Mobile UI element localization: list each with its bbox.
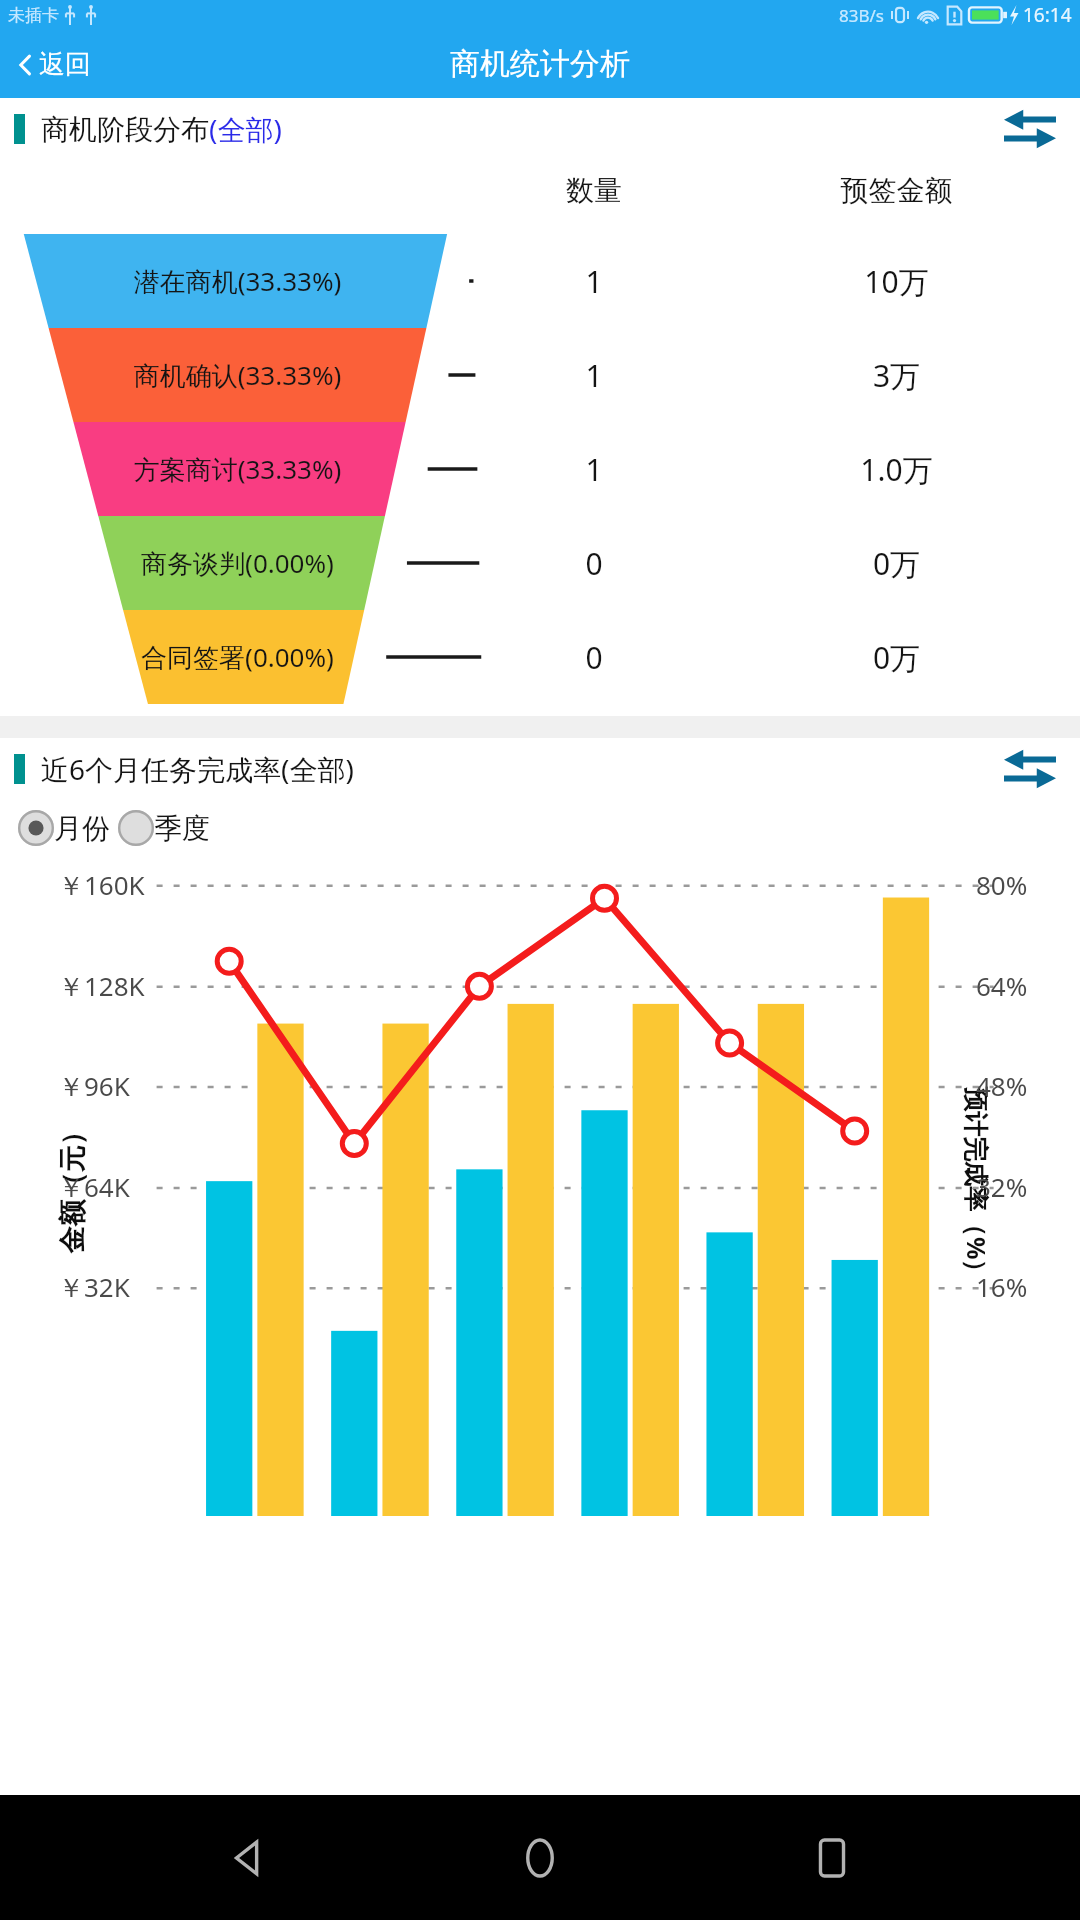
button[interactable]: Recent apps	[788, 1814, 876, 1902]
button[interactable]: Switch chart type	[1000, 745, 1060, 793]
staticText: 预计完成率（%）	[960, 1087, 994, 1285]
button[interactable]: 方案商讨(33.33%)	[0, 422, 1080, 516]
button[interactable]: 商务谈判(0.00%)	[0, 516, 1080, 610]
staticText: 0	[475, 637, 713, 678]
staticText: 64%	[976, 968, 1028, 1003]
staticText: 1.0万	[713, 449, 1080, 490]
staticText: 方案商讨(33.33%)	[0, 451, 475, 487]
staticText: 3万	[713, 355, 1080, 396]
staticText: 83B/s	[839, 4, 884, 27]
button[interactable]: 合同签署(0.00%)	[0, 610, 1080, 704]
staticText: 16%	[976, 1269, 1028, 1304]
button[interactable]: Home	[496, 1814, 584, 1902]
staticText: 数量	[475, 173, 713, 208]
staticText: 金额（元）	[54, 1118, 88, 1253]
staticText: 0万	[713, 543, 1080, 584]
button[interactable]: 商机确认(33.33%)	[0, 328, 1080, 422]
staticText: 16:14	[1023, 2, 1072, 28]
staticText: 80%	[976, 867, 1028, 902]
staticText: ￥64K	[58, 1169, 130, 1205]
staticText: 10万	[713, 261, 1080, 302]
button[interactable]: Back	[204, 1814, 292, 1902]
staticText: ￥32K	[58, 1269, 130, 1305]
staticText: 返回	[39, 48, 91, 81]
staticText: 商机阶段分布	[41, 112, 209, 147]
staticText: 商机统计分析	[450, 45, 630, 83]
button[interactable]: 返回	[0, 48, 111, 81]
staticText: 0万	[713, 637, 1080, 678]
staticText: 32%	[976, 1169, 1028, 1204]
staticText: 预签金额	[713, 173, 1080, 208]
staticText: 合同签署(0.00%)	[0, 639, 475, 675]
staticText: ￥96K	[58, 1068, 130, 1104]
staticText: ￥160K	[58, 867, 145, 903]
button[interactable]: 季度	[118, 806, 210, 850]
staticText: 商机确认(33.33%)	[0, 357, 475, 393]
staticText: 1	[475, 355, 713, 396]
staticText: 0	[475, 543, 713, 584]
staticText: 潜在商机(33.33%)	[0, 263, 475, 299]
staticText: 商务谈判(0.00%)	[0, 545, 475, 581]
staticText: (全部)	[209, 110, 282, 148]
staticText: 近6个月任务完成率(全部)	[41, 750, 354, 788]
staticText: 季度	[154, 811, 210, 846]
button[interactable]: 月份	[18, 806, 110, 850]
staticText: 48%	[976, 1068, 1028, 1103]
staticText: ￥128K	[58, 968, 145, 1004]
button[interactable]: Switch chart type	[1000, 105, 1060, 153]
button[interactable]: 潜在商机(33.33%)	[0, 234, 1080, 328]
staticText: 未插卡	[8, 5, 59, 26]
staticText: 1	[475, 449, 713, 490]
staticText: 1	[475, 261, 713, 302]
staticText: 月份	[54, 811, 110, 846]
